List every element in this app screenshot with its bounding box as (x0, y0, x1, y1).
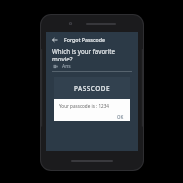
button[interactable]: OK (115, 113, 126, 121)
button[interactable]: Back (50, 35, 60, 45)
staticText: Forgot Passcode (64, 36, 105, 43)
staticText: OK (117, 114, 124, 120)
staticText: Ans (62, 63, 71, 70)
staticText: Your passcode is : 1234 (59, 103, 109, 109)
other: Answer (52, 63, 58, 69)
staticText: Which is your favorite movie? (52, 47, 132, 61)
staticText: PASSCODE (74, 84, 110, 93)
button[interactable]: Answer (52, 61, 132, 72)
button[interactable]: Back (46, 32, 138, 47)
